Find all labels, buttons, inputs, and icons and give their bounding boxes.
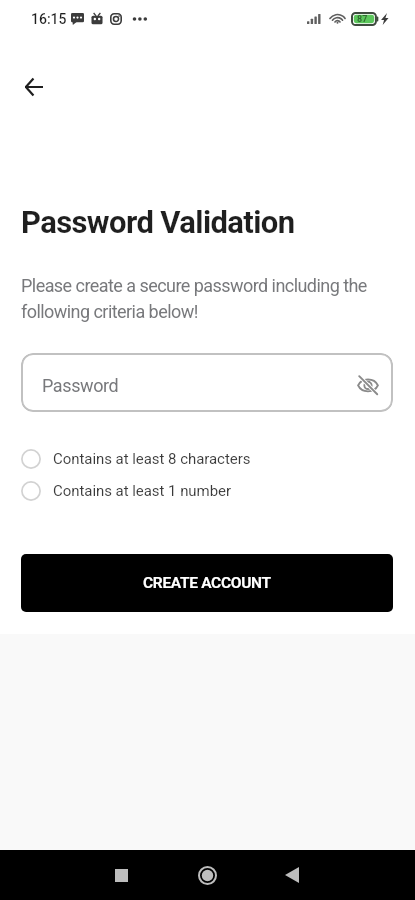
button[interactable]: Back	[264, 850, 320, 900]
button[interactable]: Recents	[93, 850, 149, 900]
button[interactable]: Contains at least 1 number	[21, 480, 231, 501]
button[interactable]: Home	[179, 850, 236, 900]
staticText: 16:15	[31, 11, 67, 27]
button[interactable]: Back	[10, 63, 58, 111]
button[interactable]: CREATE ACCOUNT	[21, 554, 393, 612]
staticText: 87	[357, 14, 368, 25]
staticText: Contains at least 1 number	[53, 482, 231, 500]
staticText: Password Validation	[21, 204, 295, 240]
button[interactable]: Password	[21, 353, 393, 412]
staticText: Contains at least 8 characters	[53, 450, 251, 468]
staticText: CREATE ACCOUNT	[143, 574, 271, 592]
button[interactable]: Contains at least 8 characters	[21, 448, 251, 469]
staticText: Password	[42, 375, 119, 396]
button[interactable]: Toggle password visibility	[350, 367, 386, 403]
staticText: Please create a secure password includin…	[21, 275, 381, 322]
